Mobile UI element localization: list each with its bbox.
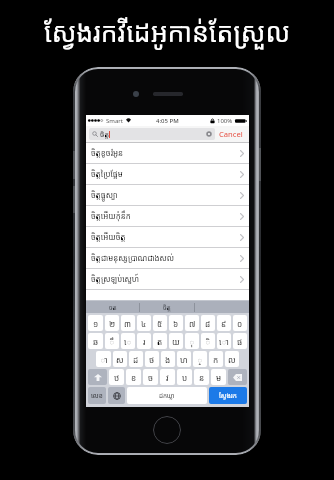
- staticText: ផ: [237, 336, 243, 347]
- staticText: ច: [148, 372, 154, 383]
- button[interactable]: ៥: [153, 315, 167, 331]
- button[interactable]: ៧: [185, 315, 199, 331]
- staticText: ៣: [124, 318, 132, 329]
- button[interactable]: ឆ: [88, 333, 103, 349]
- button[interactable]: ម: [211, 369, 226, 385]
- button[interactable]: ច: [143, 369, 158, 385]
- button[interactable]: ចិត្តស្រឡប់ស្នេហ៍: [86, 269, 249, 289]
- staticText: េ: [124, 336, 132, 347]
- staticText: ុ: [189, 336, 195, 347]
- button[interactable]: ១: [88, 315, 103, 331]
- button[interactable]: លេខ: [88, 387, 106, 404]
- button[interactable]: ៦: [169, 315, 183, 331]
- button[interactable]: ចិត្តប្រៃផ្អែម: [86, 164, 249, 184]
- staticText: ២: [109, 318, 116, 329]
- button[interactable]: ថ: [145, 351, 159, 367]
- button[interactable]: ចិត្ត: [140, 301, 194, 313]
- button[interactable]: ង: [161, 351, 175, 367]
- staticText: ា: [100, 354, 108, 365]
- staticText: ០: [237, 318, 243, 329]
- staticText: Smart: [106, 117, 123, 125]
- staticText: ចិត្ត: [100, 129, 109, 139]
- button[interactable]: វ: [160, 369, 175, 385]
- staticText: ស: [116, 354, 124, 365]
- button[interactable]: ចិត្តអើយចិត្ត: [86, 227, 249, 247]
- button[interactable]: ស្វែងរក: [209, 387, 247, 404]
- staticText: ៧: [189, 318, 196, 329]
- staticText: ចិត្តអើយកុំនឹក: [91, 211, 240, 222]
- staticText: 4:05 PM: [156, 117, 179, 125]
- button[interactable]: យ: [169, 333, 183, 349]
- staticText: ហ: [180, 354, 188, 365]
- button[interactable]: ២: [105, 315, 119, 331]
- staticText: ចិត្ត: [163, 303, 171, 311]
- button[interactable]: ៨: [201, 315, 215, 331]
- button[interactable]: ស: [113, 351, 127, 367]
- button[interactable]: ផ: [233, 333, 247, 349]
- button[interactable]: េ: [121, 333, 135, 349]
- staticText: ឹ: [109, 336, 115, 347]
- staticText: ត: [157, 336, 163, 347]
- button[interactable]: ត: [153, 333, 167, 349]
- button[interactable]: ្: [193, 351, 207, 367]
- button[interactable]: ា: [96, 351, 111, 367]
- button[interactable]: ន: [194, 369, 209, 385]
- button[interactable]: ខ: [126, 369, 141, 385]
- staticText: ប: [182, 372, 188, 383]
- button[interactable]: ចិត្តខូចរំអូន: [86, 143, 249, 163]
- staticText: លេខ: [91, 391, 103, 400]
- staticText: ស្វែងរក: [219, 391, 237, 400]
- staticText: ង: [165, 354, 171, 365]
- staticText: ល: [228, 354, 236, 365]
- staticText: វ: [166, 372, 169, 383]
- staticText: 100%: [217, 117, 233, 125]
- button[interactable]: ចិត្តអើយកុំនឹក: [86, 206, 249, 226]
- staticText: ចិត្តជាមនុស្សប្រាណជាងសល់: [91, 253, 240, 264]
- staticText: ចិត្តស្រឡប់ស្នេហ៍: [91, 274, 240, 285]
- button[interactable]: ឋ: [109, 369, 124, 385]
- button[interactable]: ចត: [86, 301, 139, 313]
- staticText: ម: [216, 372, 222, 383]
- button[interactable]: Cancel: [215, 129, 246, 139]
- staticText: ៨: [205, 318, 211, 329]
- staticText: ១: [93, 318, 99, 329]
- staticText: ៤: [141, 318, 147, 329]
- button[interactable]: ឹ: [105, 333, 119, 349]
- button[interactable]: Shift: [88, 369, 107, 385]
- button[interactable]: រ: [137, 333, 151, 349]
- staticText: រ: [143, 336, 146, 347]
- staticText: Cancel: [219, 129, 243, 139]
- button[interactable]: ល: [225, 351, 239, 367]
- staticText: ៩: [221, 318, 227, 329]
- staticText: ចិត្តប្រៃផ្អែម: [91, 169, 240, 180]
- staticText: ៥: [157, 318, 163, 329]
- button[interactable]: ចិត្ត: [89, 128, 215, 140]
- staticText: ៦: [173, 318, 179, 329]
- button[interactable]: ោ: [217, 333, 231, 349]
- button[interactable]: ក: [209, 351, 223, 367]
- button[interactable]: ុ: [185, 333, 199, 349]
- staticText: ខ: [131, 372, 137, 383]
- button[interactable]: ៤: [137, 315, 151, 331]
- staticText: ោ: [219, 336, 229, 347]
- button[interactable]: ៩: [217, 315, 231, 331]
- button[interactable]: ៣: [121, 315, 135, 331]
- button[interactable]: ០: [233, 315, 247, 331]
- staticText: ចិត្តអើយចិត្ត: [91, 232, 240, 243]
- staticText: ដ: [133, 354, 139, 365]
- staticText: ដកឃ្លា: [159, 391, 175, 400]
- button[interactable]: ហ: [177, 351, 191, 367]
- button[interactable]: ិ: [201, 333, 215, 349]
- staticText: ិ: [205, 336, 211, 347]
- button[interactable]: ចិត្តធ្លូស្បា: [86, 185, 249, 205]
- button[interactable]: Change keyboard: [108, 387, 125, 404]
- button[interactable]: ដ: [129, 351, 143, 367]
- staticText: ឆ: [93, 336, 99, 347]
- button[interactable]: ចិត្តជាមនុស្សប្រាណជាងសល់: [86, 248, 249, 268]
- button[interactable]: ប: [177, 369, 192, 385]
- button[interactable]: Delete: [228, 369, 247, 385]
- staticText: ន: [199, 372, 205, 383]
- staticText: ចិត្តធ្លូស្បា: [91, 190, 240, 201]
- button[interactable]: ដកឃ្លា: [127, 387, 207, 404]
